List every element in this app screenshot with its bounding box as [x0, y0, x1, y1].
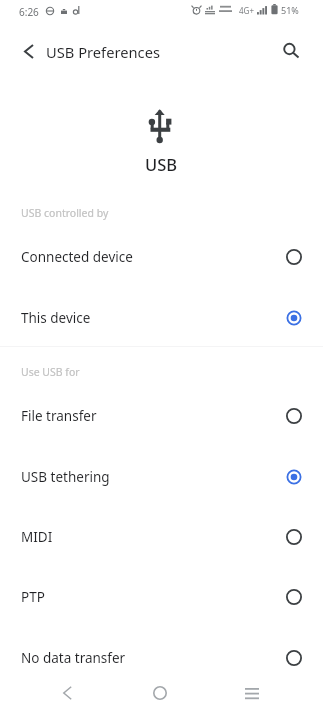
- button[interactable]: Back: [46, 672, 88, 714]
- staticText: Use USB for: [21, 365, 80, 379]
- button[interactable]: Home: [139, 672, 181, 714]
- staticText: USB tethering: [21, 468, 110, 486]
- staticText: File transfer: [21, 407, 97, 425]
- staticText: No data transfer: [21, 649, 126, 667]
- staticText: 4G+: [239, 5, 254, 16]
- button[interactable]: Search: [274, 34, 307, 67]
- button[interactable]: File transfer: [0, 386, 323, 446]
- button[interactable]: USB tethering: [0, 447, 323, 507]
- button[interactable]: Back: [12, 35, 45, 68]
- staticText: USB Preferences: [46, 42, 160, 62]
- button[interactable]: MIDI: [0, 507, 323, 567]
- staticText: USB: [145, 153, 178, 175]
- staticText: This device: [21, 309, 91, 327]
- button[interactable]: PTP: [0, 567, 323, 627]
- button[interactable]: Connected device: [0, 227, 323, 287]
- button[interactable]: No data transfer: [0, 628, 323, 688]
- staticText: MIDI: [21, 528, 53, 546]
- button[interactable]: This device: [0, 288, 323, 348]
- staticText: PTP: [21, 588, 45, 606]
- staticText: 6:26: [19, 5, 39, 19]
- staticText: 51%: [281, 4, 299, 16]
- staticText: Connected device: [21, 248, 133, 266]
- staticText: USB controlled by: [21, 206, 109, 220]
- button[interactable]: Recent apps: [231, 672, 273, 714]
